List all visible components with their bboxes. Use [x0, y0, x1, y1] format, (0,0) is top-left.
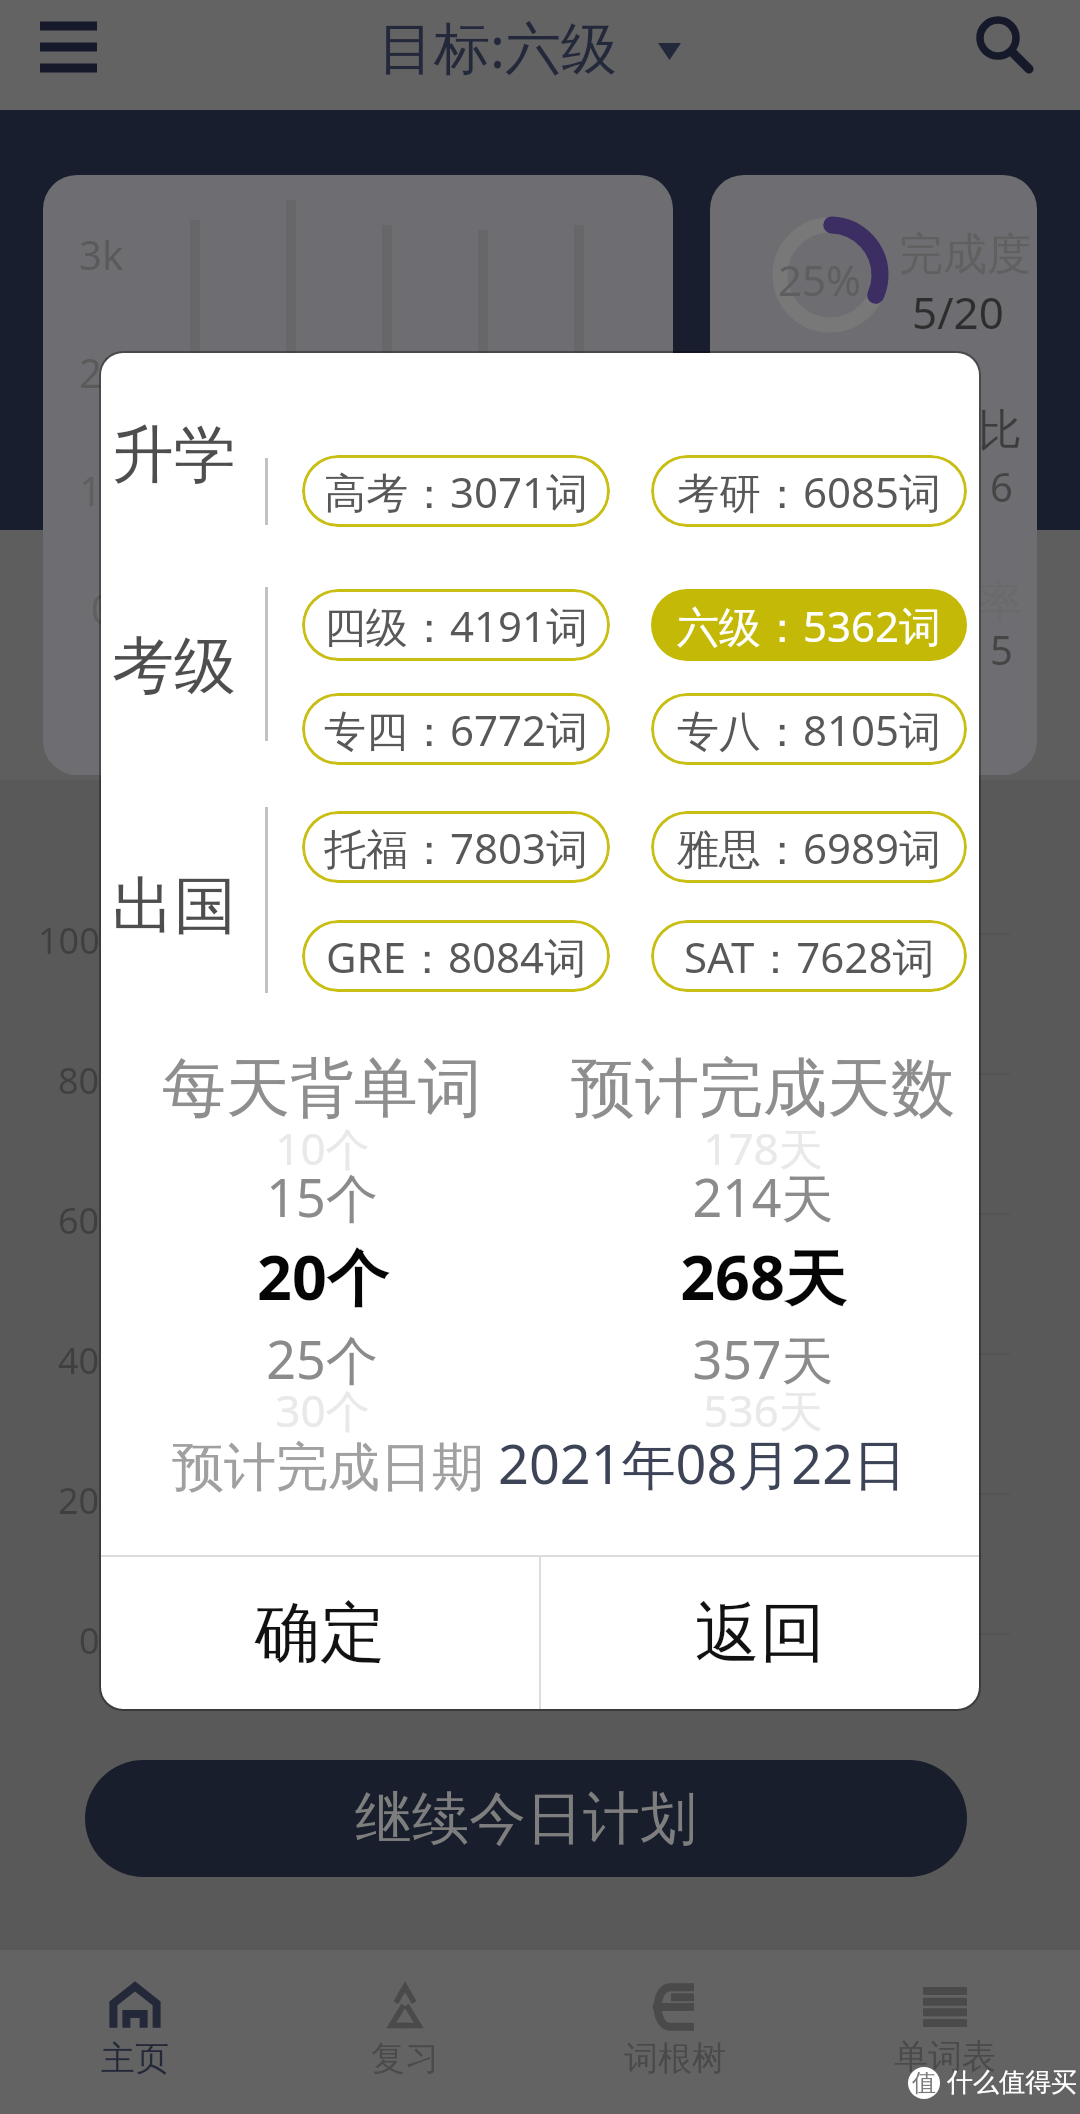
staticText: 预计完成天数: [571, 1048, 955, 1129]
staticText: 0: [79, 1616, 100, 1665]
button[interactable]: 主页: [0, 1950, 270, 2114]
button[interactable]: GRE：8084词: [302, 920, 610, 992]
button[interactable]: 四级：4191词: [302, 589, 610, 661]
staticText: 10个: [275, 1118, 370, 1178]
staticText: 词根树: [624, 2037, 726, 2080]
staticText: 考研：6085词: [677, 463, 942, 520]
staticText: 专八：8105词: [677, 701, 942, 758]
staticText: 考级: [112, 627, 236, 705]
staticText: 60: [58, 1196, 100, 1245]
staticText: 536天: [703, 1380, 823, 1440]
button[interactable]: Menu: [40, 22, 97, 72]
staticText: 5: [990, 622, 1013, 676]
staticText: 0: [91, 581, 114, 635]
staticText: 268天: [680, 1235, 846, 1318]
staticText: 178天: [703, 1118, 823, 1178]
staticText: 5/20: [912, 282, 1004, 342]
staticText: 确定: [255, 1592, 385, 1674]
staticText: 什么值得买: [947, 2066, 1077, 2099]
staticText: 复习: [371, 2037, 439, 2080]
button[interactable]: 六级：5362词: [651, 589, 967, 661]
staticText: 3k: [79, 227, 124, 281]
staticText: 主页: [101, 2037, 169, 2080]
button[interactable]: 专八：8105词: [651, 693, 967, 765]
staticText: 30个: [275, 1380, 370, 1440]
staticText: 专四：6772词: [324, 701, 589, 758]
staticText: 六级：5362词: [677, 597, 942, 654]
staticText: 100: [38, 916, 100, 965]
staticText: 返回: [695, 1592, 825, 1674]
staticText: 目标:六级: [378, 8, 618, 84]
button[interactable]: 考研：6085词: [651, 455, 967, 527]
staticText: 完成度: [899, 227, 1031, 282]
staticText: 25%: [778, 251, 861, 308]
button[interactable]: 返回: [541, 1557, 979, 1709]
staticText: 6: [990, 459, 1013, 513]
button[interactable]: 目标:六级: [378, 8, 681, 84]
staticText: 25个: [266, 1323, 378, 1394]
staticText: 20: [58, 1476, 100, 1525]
staticText: 高考：3071词: [324, 463, 589, 520]
staticText: 15个: [266, 1161, 378, 1232]
staticText: 出国: [112, 867, 236, 945]
button[interactable]: 词根树: [540, 1950, 810, 2114]
button[interactable]: 托福：7803词: [302, 811, 610, 883]
staticText: 比: [978, 403, 1022, 458]
staticText: 214天: [692, 1161, 834, 1232]
button[interactable]: SAT：7628词: [651, 920, 967, 992]
staticText: 40: [58, 1336, 100, 1385]
button[interactable]: 单词表: [810, 1950, 1080, 2114]
staticText: 值: [912, 2068, 936, 2098]
staticText: 升学: [112, 416, 236, 494]
staticText: 2k: [79, 345, 124, 399]
staticText: 357天: [692, 1323, 834, 1394]
button[interactable]: 确定: [101, 1557, 539, 1709]
button[interactable]: 复习: [270, 1950, 540, 2114]
staticText: 托福：7803词: [324, 819, 589, 876]
button[interactable]: 雅思：6989词: [651, 811, 967, 883]
staticText: 20个: [257, 1235, 388, 1318]
staticText: 率: [978, 575, 1022, 630]
button[interactable]: Search: [968, 8, 1038, 78]
staticText: GRE：8084词: [326, 928, 587, 985]
staticText: 80: [58, 1056, 100, 1105]
staticText: SAT：7628词: [684, 928, 935, 985]
staticText: 雅思：6989词: [677, 819, 942, 876]
staticText: 继续今日计划: [355, 1783, 697, 1855]
button[interactable]: 高考：3071词: [302, 455, 610, 527]
staticText: 1k: [79, 463, 124, 517]
staticText: 每天背单词: [162, 1048, 482, 1129]
staticText: 2021年08月22日: [498, 1426, 908, 1500]
staticText: 四级：4191词: [324, 597, 589, 654]
button[interactable]: 继续今日计划: [85, 1760, 967, 1877]
staticText: 单词表: [894, 2035, 996, 2078]
staticText: 预计完成日期: [172, 1429, 498, 1500]
button[interactable]: 专四：6772词: [302, 693, 610, 765]
